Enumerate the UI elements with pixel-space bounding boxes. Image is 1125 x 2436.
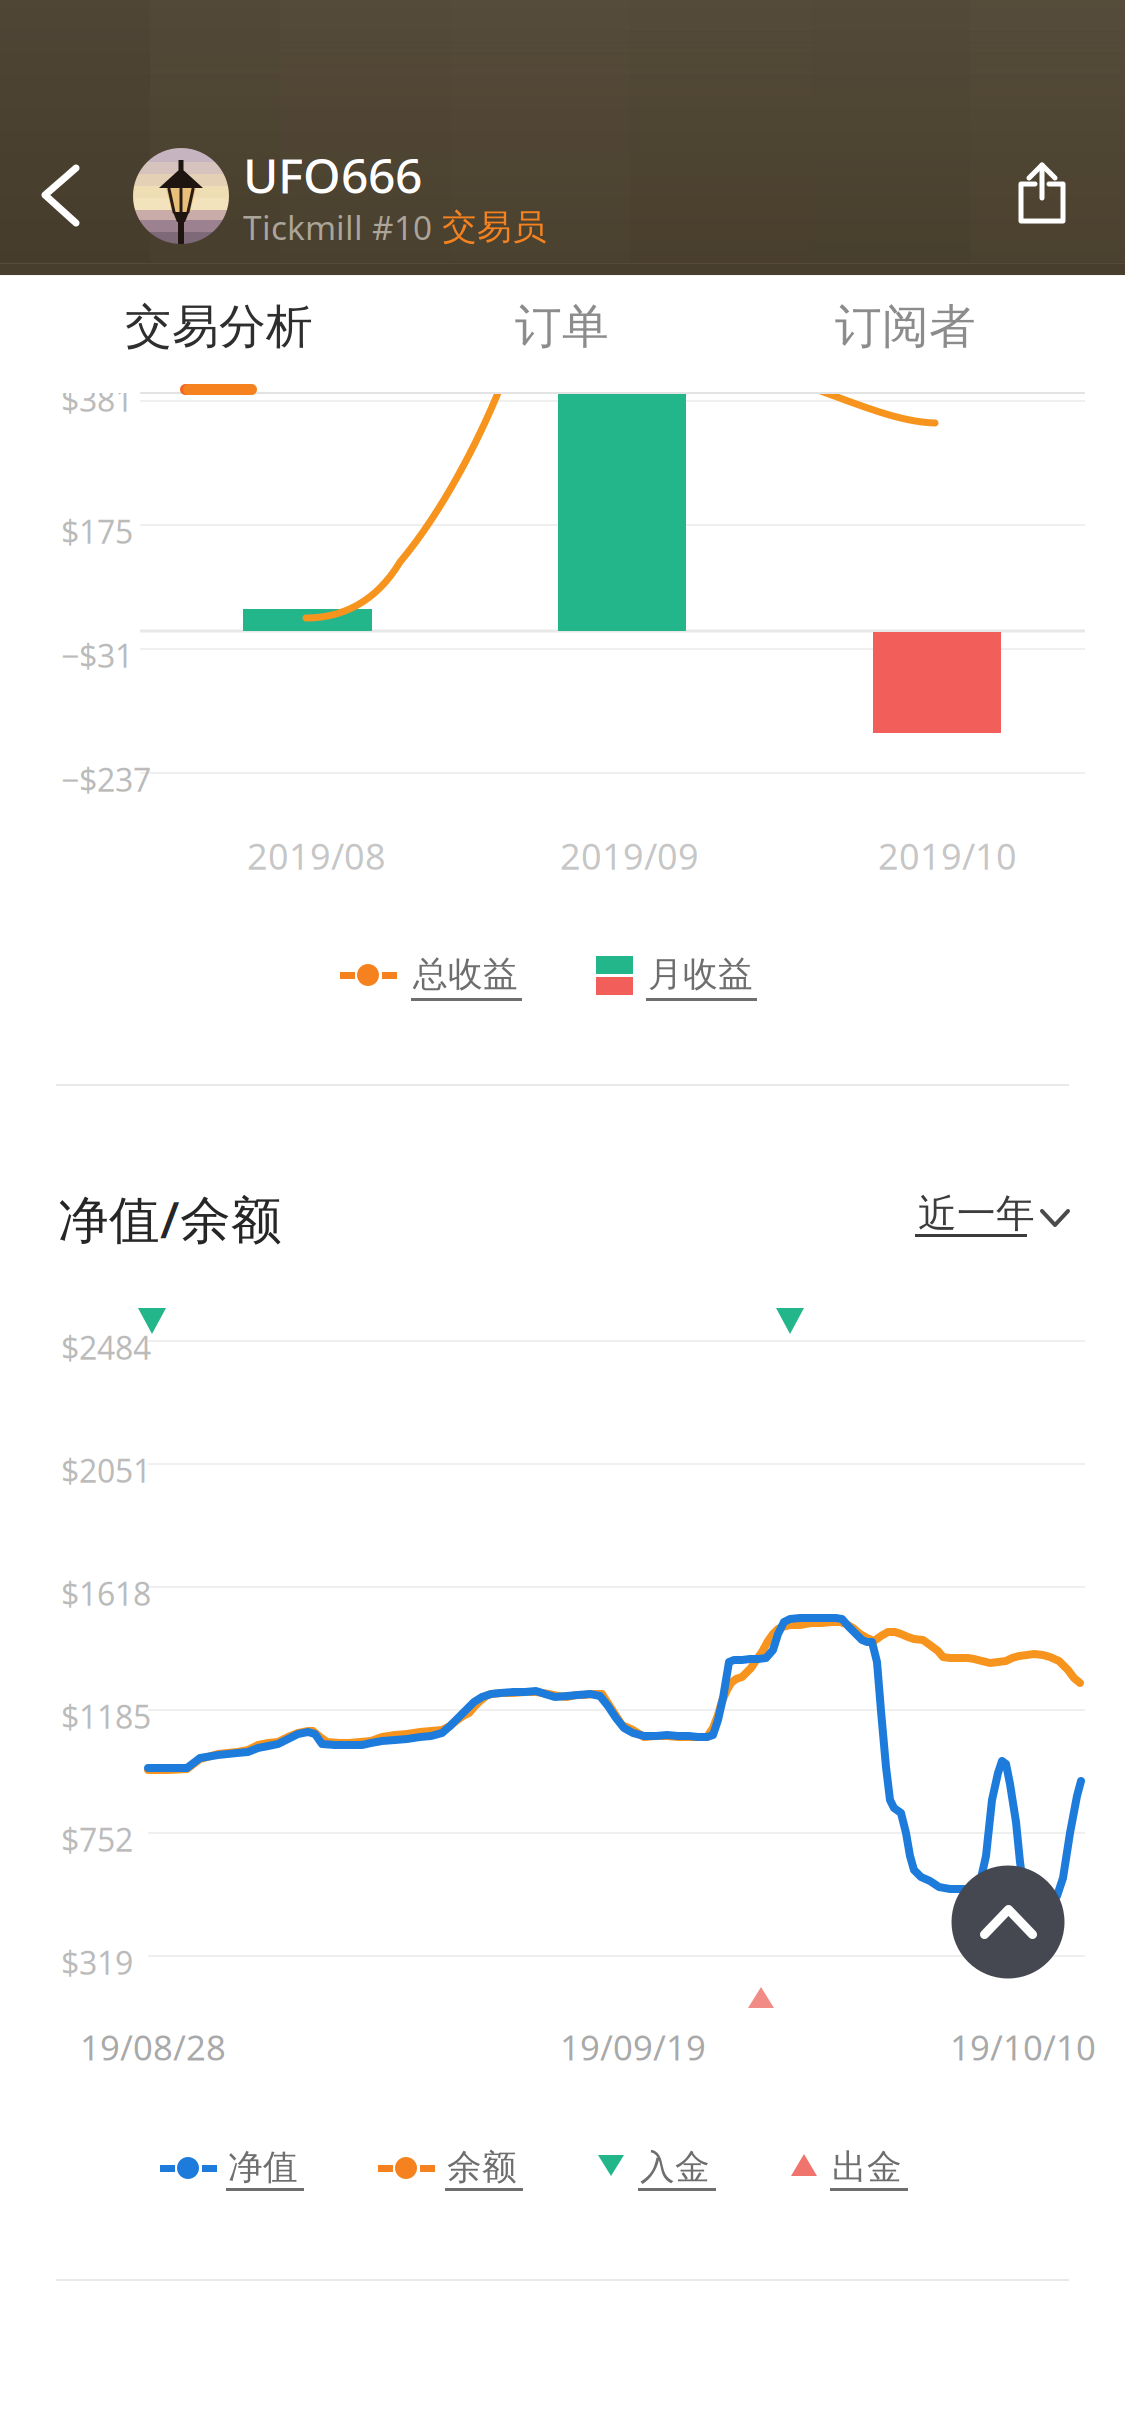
button[interactable]: 订单	[375, 262, 715, 398]
staticText: −$237	[61, 758, 151, 800]
staticText: 交易员	[442, 206, 547, 248]
button[interactable]: 入金	[0, 0, 1125, 2436]
staticText: 2019/09	[560, 832, 699, 880]
button[interactable]: Share	[0, 0, 1066, 224]
staticText: $1185	[61, 1695, 151, 1737]
staticText: $752	[61, 1818, 133, 1860]
staticText: $1618	[61, 1572, 151, 1614]
button[interactable]: 出金	[0, 0, 1125, 2436]
button[interactable]: 近一年	[0, 0, 1125, 2436]
staticText: 净值	[228, 2146, 298, 2189]
staticText: 净值/余额	[58, 1185, 282, 1252]
button[interactable]: 交易分析	[0, 262, 375, 398]
button[interactable]: Scroll to top	[0, 0, 1125, 2436]
button[interactable]: 余额	[0, 0, 1125, 2436]
staticText: $2051	[61, 1449, 151, 1491]
staticText: 月收益	[648, 953, 753, 996]
staticText: 入金	[640, 2146, 710, 2189]
staticText: $2484	[61, 1326, 151, 1368]
staticText: 余额	[447, 2146, 517, 2189]
staticText: $175	[61, 510, 133, 552]
staticText: 总收益	[413, 953, 518, 996]
staticText: 2019/08	[247, 832, 386, 880]
staticText: 2019/10	[878, 832, 1017, 880]
staticText: 订单	[515, 298, 609, 355]
staticText: 19/09/19	[560, 2024, 706, 2070]
staticText: 订阅者	[835, 298, 976, 355]
staticText: 出金	[832, 2146, 902, 2189]
staticText: UFO666	[243, 143, 422, 207]
button[interactable]: 净值	[0, 0, 1125, 2436]
button[interactable]: 月收益	[0, 0, 1125, 2436]
staticText: −$31	[61, 634, 133, 676]
button[interactable]: 总收益	[0, 0, 1125, 2436]
button[interactable]: Back	[0, 0, 81, 228]
button[interactable]: 订阅者	[715, 262, 1125, 398]
staticText: $381	[61, 378, 133, 420]
staticText: 19/08/28	[80, 2024, 226, 2070]
staticText: 近一年	[918, 1190, 1035, 1237]
staticText: 交易分析	[125, 298, 313, 355]
staticText: Tickmill #10	[243, 205, 432, 249]
staticText: $319	[61, 1941, 133, 1983]
staticText: 19/10/10	[950, 2024, 1096, 2070]
